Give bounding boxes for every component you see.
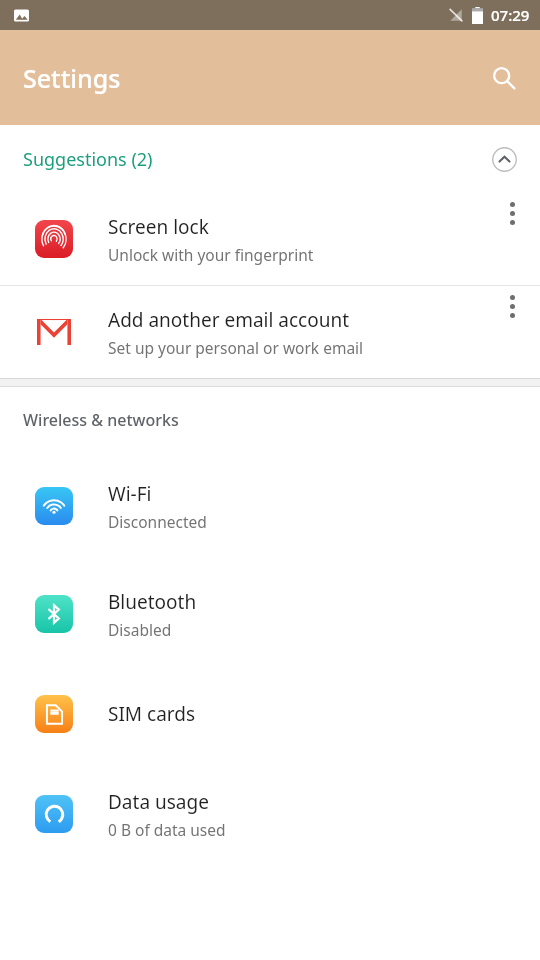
- staticText: 07:29: [491, 5, 530, 25]
- button[interactable]: More options: [484, 286, 540, 378]
- button[interactable]: Wi-Fi: [0, 452, 540, 560]
- staticText: Wireless & networks: [23, 409, 179, 431]
- button[interactable]: Bluetooth: [0, 560, 540, 668]
- staticText: Bluetooth: [108, 589, 197, 615]
- button[interactable]: More options: [484, 193, 540, 285]
- other: Collapse suggestions: [484, 139, 524, 179]
- staticText: SIM cards: [108, 701, 196, 727]
- staticText: Suggestions (2): [23, 147, 153, 172]
- staticText: Set up your personal or work email: [108, 337, 364, 358]
- button[interactable]: Search: [480, 54, 528, 102]
- button[interactable]: SIM cards: [0, 668, 540, 760]
- button[interactable]: Screen lock: [0, 193, 540, 285]
- staticText: 0 B of data used: [108, 819, 226, 840]
- button[interactable]: Data usage: [0, 760, 540, 868]
- staticText: Add another email account: [108, 307, 350, 333]
- staticText: Unlock with your fingerprint: [108, 244, 314, 265]
- staticText: Data usage: [108, 789, 209, 815]
- staticText: Screen lock: [108, 214, 209, 240]
- staticText: Disabled: [108, 619, 172, 640]
- staticText: Wi-Fi: [108, 481, 152, 507]
- staticText: Disconnected: [108, 511, 207, 532]
- staticText: Settings: [23, 61, 121, 95]
- button[interactable]: Suggestions (2): [0, 125, 540, 193]
- button[interactable]: Add another email account: [0, 286, 540, 378]
